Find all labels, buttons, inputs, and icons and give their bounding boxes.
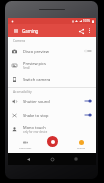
button[interactable]: Shutter sound [8,94,96,108]
button[interactable]: More options [86,27,93,34]
staticText: Shutter sound [23,99,50,104]
staticText: Camcorder [19,146,32,149]
staticText: Disco preview [23,49,49,54]
staticText: Camera [13,38,26,42]
button[interactable]: Share [77,27,85,35]
staticText: Setting [77,146,85,149]
staticText: Small [23,66,30,70]
button[interactable]: Recents [72,155,80,163]
button[interactable]: Disco preview [8,44,96,58]
staticText: Gaming [22,28,39,34]
button[interactable]: Menu [12,27,20,35]
staticText: Mono touch [23,125,46,130]
button[interactable]: Shake to stop [8,108,96,122]
button[interactable]: Switch camera [8,72,96,86]
staticText: only for rear device [23,130,48,134]
staticText: Switch camera [23,77,51,82]
staticText: Accessibility [13,89,32,93]
button[interactable]: Mono touch [8,122,96,136]
button[interactable]: Camcorder [19,140,32,149]
button[interactable]: Back [24,155,32,163]
button[interactable]: Setting [77,140,85,149]
staticText: 100% [83,19,91,23]
staticText: Shake to stop [23,113,49,118]
button[interactable]: Preview pics [8,58,96,72]
button[interactable]: Home [48,155,56,163]
staticText: Preview pics [23,61,46,66]
button[interactable]: Record [47,136,58,147]
